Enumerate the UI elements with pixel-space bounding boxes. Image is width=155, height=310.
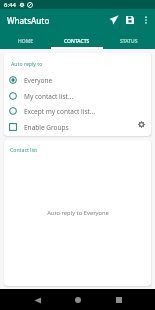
button[interactable]: Recents	[111, 290, 131, 310]
staticText: Except my contact list...	[24, 107, 96, 116]
staticText: 6:44	[4, 1, 16, 9]
button[interactable]: Settings	[133, 116, 149, 132]
staticText: STATUS	[120, 38, 138, 45]
button[interactable]: More options	[138, 12, 154, 28]
button[interactable]: Everyone	[4, 73, 151, 87]
staticText: Auto reply to	[11, 60, 43, 67]
staticText: Auto reply to Everyone	[47, 209, 109, 217]
staticText: Everyone	[24, 76, 53, 85]
button[interactable]: Home	[68, 290, 88, 310]
button[interactable]: Send	[106, 12, 122, 28]
button[interactable]: CONTACTS	[51, 35, 103, 49]
button[interactable]: STATUS	[103, 35, 155, 49]
button[interactable]: Enable Groups	[4, 120, 151, 134]
button[interactable]: Except my contact list...	[4, 104, 151, 118]
button[interactable]: My contact list...	[4, 89, 151, 103]
staticText: Enable Groups	[24, 123, 69, 132]
staticText: CONTACTS	[64, 38, 90, 45]
button[interactable]: Back	[24, 290, 44, 310]
staticText: WhatsAuto	[7, 15, 50, 26]
staticText: My contact list...	[24, 92, 74, 101]
staticText: HOME	[18, 38, 34, 45]
button[interactable]: Save	[122, 12, 138, 28]
staticText: Contact list	[10, 146, 38, 153]
button[interactable]: HOME	[0, 35, 51, 49]
